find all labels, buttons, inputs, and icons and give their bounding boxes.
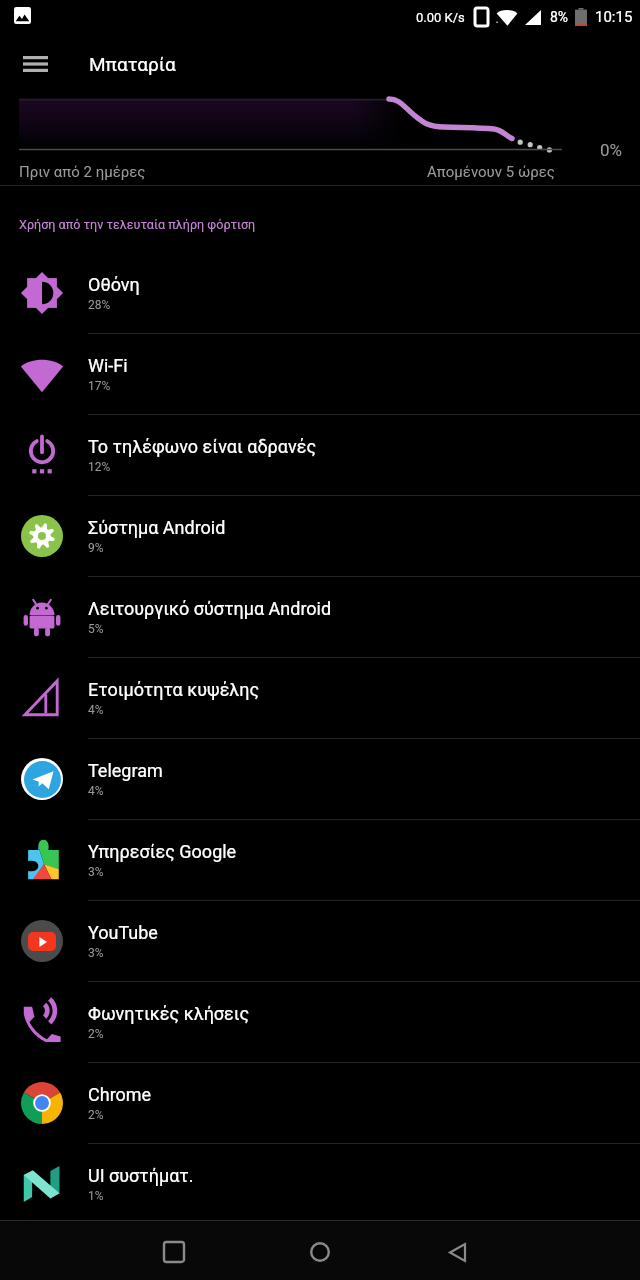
button[interactable]: Οθόνη — [0, 253, 640, 333]
staticText: Chrome — [88, 1084, 152, 1105]
staticText: YouTube — [88, 922, 158, 943]
staticText: 3% — [88, 946, 104, 960]
staticText: 3% — [88, 865, 104, 879]
button[interactable]: Back — [431, 1226, 483, 1278]
staticText: Wi-Fi — [88, 355, 128, 376]
staticText: 4% — [88, 784, 104, 798]
staticText: Υπηρεσίες Google — [88, 841, 237, 862]
staticText: 1% — [88, 1189, 104, 1203]
staticText: Λειτουργικό σύστημα Android — [88, 598, 332, 619]
staticText: Μπαταρία — [89, 53, 176, 75]
button[interactable]: Φωνητικές κλήσεις — [0, 982, 640, 1062]
button[interactable]: Το τηλέφωνο είναι αδρανές — [0, 415, 640, 495]
staticText: Οθόνη — [88, 274, 140, 295]
staticText: UI συστήματ. — [88, 1165, 194, 1186]
staticText: 2% — [88, 1027, 104, 1041]
staticText: 10:15 — [595, 8, 633, 26]
staticText: Χρήση από την τελευταία πλήρη φόρτιση — [19, 217, 256, 232]
staticText: Το τηλέφωνο είναι αδρανές — [88, 436, 317, 457]
button[interactable]: Υπηρεσίες Google — [0, 820, 640, 900]
staticText: 2% — [88, 1108, 104, 1122]
button[interactable]: Λειτουργικό σύστημα Android — [0, 577, 640, 657]
staticText: Telegram — [88, 760, 163, 781]
button[interactable]: Recents — [148, 1226, 200, 1278]
button[interactable]: Home — [294, 1226, 346, 1278]
staticText: 5% — [88, 622, 104, 636]
staticText: 0.00 K/s — [416, 10, 465, 25]
staticText: 4% — [88, 703, 104, 717]
staticText: 9% — [88, 541, 104, 555]
button[interactable]: Chrome — [0, 1063, 640, 1143]
button[interactable]: Telegram — [0, 739, 640, 819]
button[interactable]: Wi-Fi — [0, 334, 640, 414]
staticText: Σύστημα Android — [88, 517, 226, 538]
staticText: Φωνητικές κλήσεις — [88, 1003, 250, 1024]
button[interactable]: YouTube — [0, 901, 640, 981]
staticText: Απομένουν 5 ώρες — [427, 163, 555, 181]
staticText: 12% — [88, 460, 111, 474]
staticText: Πριν από 2 ημέρες — [19, 163, 146, 181]
staticText: 0% — [600, 140, 623, 160]
staticText: 17% — [88, 379, 111, 393]
staticText: 8% — [550, 9, 569, 25]
staticText: Ετοιμότητα κυψέλης — [88, 679, 260, 700]
staticText: 28% — [88, 298, 111, 312]
button[interactable]: Ετοιμότητα κυψέλης — [0, 658, 640, 738]
button[interactable]: UI συστήματ. — [0, 1144, 640, 1224]
button[interactable]: Σύστημα Android — [0, 496, 640, 576]
button[interactable]: Menu — [7, 36, 63, 92]
